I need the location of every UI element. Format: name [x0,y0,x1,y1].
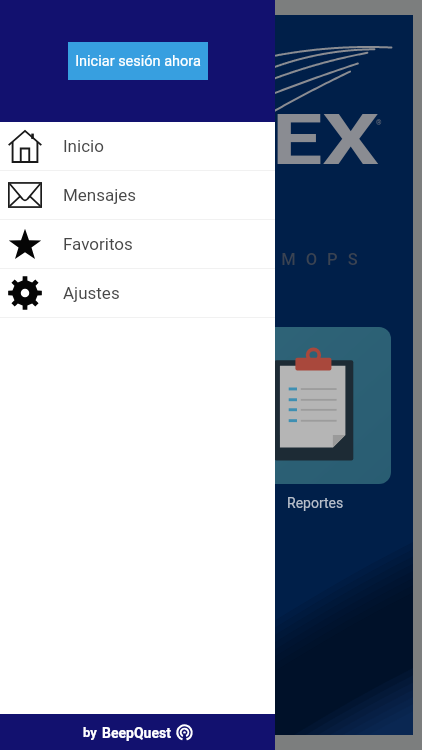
staticText: CURSOS MOPS [144,250,368,269]
button[interactable]: Mensajes [0,171,275,219]
button[interactable]: Inicio [0,122,275,170]
staticText: Ajustes [63,283,120,303]
staticText: Inicio [63,136,104,156]
staticText: ® [376,119,382,127]
button[interactable]: Ajustes [0,269,275,317]
button[interactable]: Reportes [238,327,391,484]
staticText: Favoritos [63,234,133,254]
staticText: by [83,725,97,740]
staticText: Iniciar sesión ahora [75,53,201,70]
button[interactable]: Favoritos [0,220,275,268]
staticText: EX [272,98,380,181]
button[interactable]: Iniciar sesión ahora [68,42,208,80]
staticText: Mensajes [63,185,137,205]
staticText: BeepQuest [102,725,171,741]
staticText: Reportes [287,495,344,511]
